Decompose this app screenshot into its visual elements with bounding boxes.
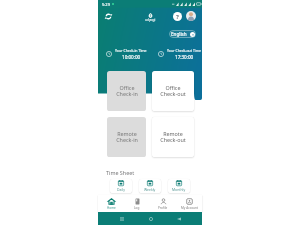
staticText: 10:00:00 bbox=[122, 54, 141, 60]
staticText: Office Check-out bbox=[160, 84, 186, 98]
staticText: 5:29 bbox=[102, 2, 110, 7]
staticText: Weekly bbox=[144, 187, 156, 192]
staticText: 17:30:00 bbox=[175, 54, 194, 60]
staticText: Log bbox=[134, 206, 140, 210]
button[interactable]: Remote Check-in bbox=[107, 117, 146, 157]
button[interactable]: Recent apps bbox=[117, 214, 126, 223]
staticText: Office Check-in bbox=[116, 84, 138, 98]
staticText: Your Check-in Time bbox=[115, 48, 147, 53]
button[interactable]: Monthly bbox=[168, 179, 190, 193]
button[interactable]: Office Check-in bbox=[107, 71, 146, 111]
staticText: English bbox=[171, 31, 187, 37]
staticText: Daily bbox=[117, 187, 125, 192]
button[interactable]: Log bbox=[124, 195, 150, 212]
staticText: Remote Check-in bbox=[116, 130, 138, 144]
staticText: Home bbox=[107, 206, 116, 210]
button[interactable]: Profile bbox=[150, 195, 176, 212]
button[interactable]: Remote Check-out bbox=[152, 117, 194, 157]
staticText: Remote Check-out bbox=[160, 130, 186, 144]
button[interactable]: My Account bbox=[176, 195, 202, 212]
button[interactable]: Daily bbox=[110, 179, 132, 193]
staticText: ? bbox=[176, 13, 179, 21]
staticText: My Account bbox=[181, 206, 198, 210]
button[interactable]: Weekly bbox=[139, 179, 161, 193]
button[interactable]: Sync bbox=[103, 11, 114, 22]
staticText: Profile bbox=[158, 206, 168, 210]
button[interactable]: Office Check-out bbox=[152, 71, 194, 111]
button[interactable]: Home bbox=[98, 195, 124, 212]
staticText: Monthly bbox=[172, 187, 186, 192]
button[interactable]: Help bbox=[173, 12, 182, 21]
staticText: udyogi bbox=[145, 18, 156, 22]
button[interactable]: Home bbox=[146, 214, 155, 223]
button[interactable]: Profile bbox=[186, 11, 196, 21]
button[interactable]: English bbox=[169, 30, 196, 38]
staticText: Your Check-out Time bbox=[167, 48, 202, 53]
staticText: Time Sheet bbox=[106, 169, 135, 176]
button[interactable]: Back bbox=[174, 214, 183, 223]
